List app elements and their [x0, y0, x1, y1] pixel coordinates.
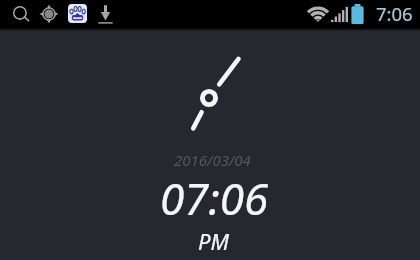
staticText: PM — [198, 226, 229, 256]
other: Mobile signal — [331, 5, 348, 22]
staticText: 07:06 — [160, 168, 269, 228]
button[interactable]: Clock — [0, 0, 420, 260]
button[interactable]: Baidu — [68, 4, 87, 23]
staticText: 2016/03/04 — [174, 150, 251, 170]
button[interactable]: Location — [39, 4, 59, 24]
staticText: 7:06 — [376, 1, 413, 26]
button[interactable]: Search — [13, 5, 31, 23]
button[interactable]: Download — [97, 4, 114, 24]
other: Battery — [351, 4, 364, 24]
other: Wi-Fi — [306, 5, 330, 22]
